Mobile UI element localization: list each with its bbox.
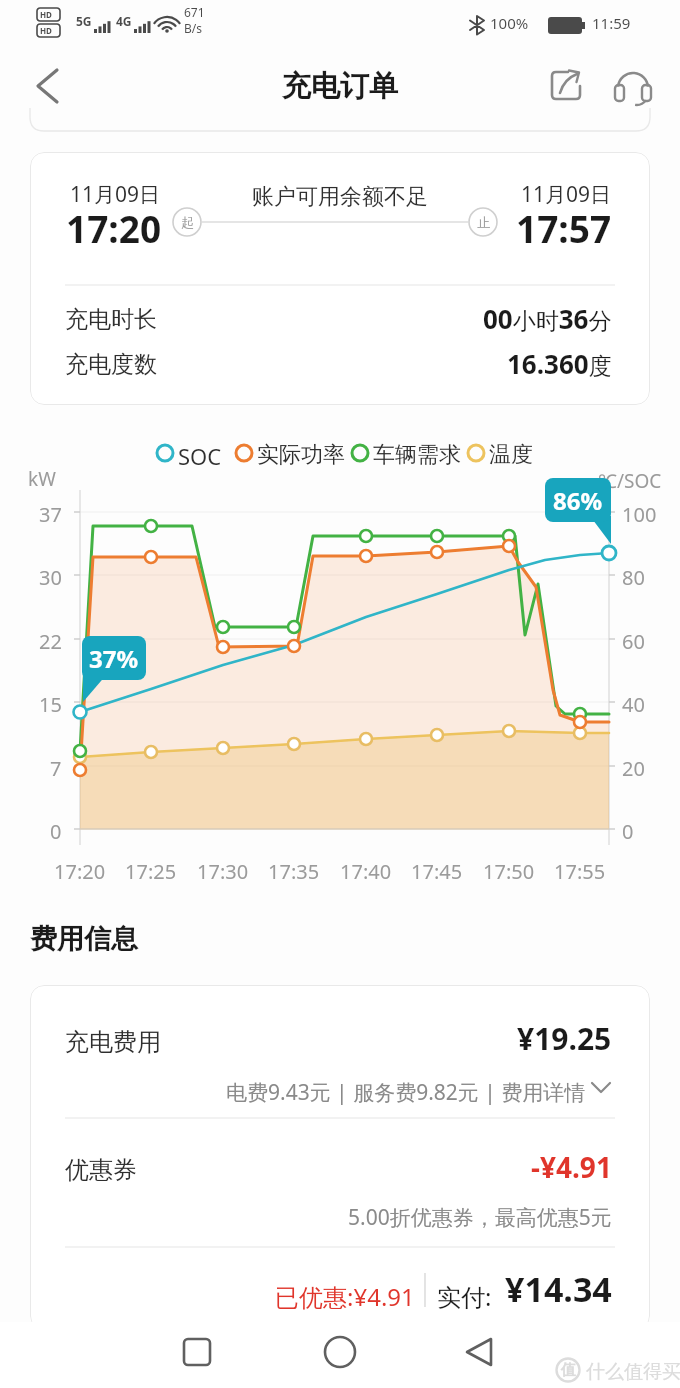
staticText: 充电订单 — [282, 68, 398, 105]
staticText: 0 — [50, 818, 62, 845]
staticText: 5G — [76, 13, 92, 29]
button[interactable] — [608, 62, 660, 110]
staticText: 5.00折优惠券，最高优惠5元 — [348, 1203, 612, 1232]
staticText: 17:57 — [516, 203, 612, 253]
staticText: SOC — [178, 441, 222, 471]
button[interactable] — [542, 62, 590, 110]
staticText: 充电时长 — [65, 305, 157, 334]
staticText: B/s — [184, 20, 203, 36]
staticText: 22 — [39, 628, 62, 655]
staticText: 17:40 — [340, 858, 392, 885]
staticText: 37 — [39, 501, 62, 528]
staticText: 充电费用 — [65, 1027, 161, 1057]
staticText: 20 — [622, 755, 645, 782]
staticText: 100 — [622, 501, 657, 528]
staticText: 16.360度 — [507, 346, 612, 381]
staticText: 17:45 — [411, 858, 463, 885]
staticText: 86% — [553, 484, 603, 517]
staticText: 费用信息 — [30, 922, 138, 956]
staticText: 37% — [89, 642, 139, 675]
staticText: 电费9.43元 | 服务费9.82元 | 费用详情 — [226, 1078, 586, 1107]
staticText: 7 — [50, 755, 62, 782]
staticText: 实付: — [437, 1280, 492, 1313]
staticText: 11月09日 — [521, 180, 612, 209]
staticText: 账户可用余额不足 — [252, 183, 428, 211]
staticText: 温度 — [489, 441, 533, 469]
staticText: 起 — [181, 214, 194, 230]
staticText: 00小时36分 — [483, 301, 612, 336]
staticText: 17:20 — [66, 203, 162, 253]
staticText: 17:20 — [54, 858, 106, 885]
staticText: 0 — [622, 818, 634, 845]
staticText: 4G — [116, 13, 132, 29]
staticText: 100% — [490, 13, 529, 33]
staticText: HD — [40, 25, 52, 36]
button[interactable] — [443, 1326, 517, 1382]
staticText: 40 — [622, 691, 645, 718]
staticText: ¥14.34 — [505, 1266, 612, 1312]
staticText: kW — [28, 466, 56, 492]
staticText: ℃/SOC — [598, 468, 662, 494]
staticText: 60 — [622, 628, 645, 655]
staticText: 17:25 — [125, 858, 177, 885]
staticText: 值 — [561, 1361, 576, 1380]
staticText: 充电度数 — [65, 350, 157, 379]
button[interactable] — [160, 1326, 234, 1382]
staticText: ¥19.25 — [517, 1018, 612, 1059]
staticText: 什么值得买 — [586, 1360, 680, 1384]
staticText: 17:30 — [197, 858, 249, 885]
button[interactable] — [303, 1326, 377, 1382]
staticText: 17:35 — [268, 858, 320, 885]
staticText: 17:55 — [554, 858, 606, 885]
staticText: 车辆需求 — [373, 441, 461, 469]
staticText: 80 — [622, 564, 645, 591]
button[interactable] — [24, 56, 72, 112]
staticText: 15 — [39, 691, 62, 718]
staticText: 11:59 — [592, 13, 631, 33]
staticText: 30 — [39, 564, 62, 591]
staticText: HD — [40, 9, 52, 20]
staticText: 17:50 — [483, 858, 535, 885]
staticText: 优惠券 — [65, 1155, 137, 1185]
button[interactable] — [230, 1068, 616, 1110]
staticText: 止 — [477, 214, 490, 230]
staticText: 671 — [184, 4, 205, 20]
staticText: 11月09日 — [70, 180, 161, 209]
staticText: 实际功率 — [257, 441, 345, 469]
staticText: -¥4.91 — [531, 1148, 612, 1186]
staticText: 已优惠:¥4.91 — [275, 1280, 415, 1313]
